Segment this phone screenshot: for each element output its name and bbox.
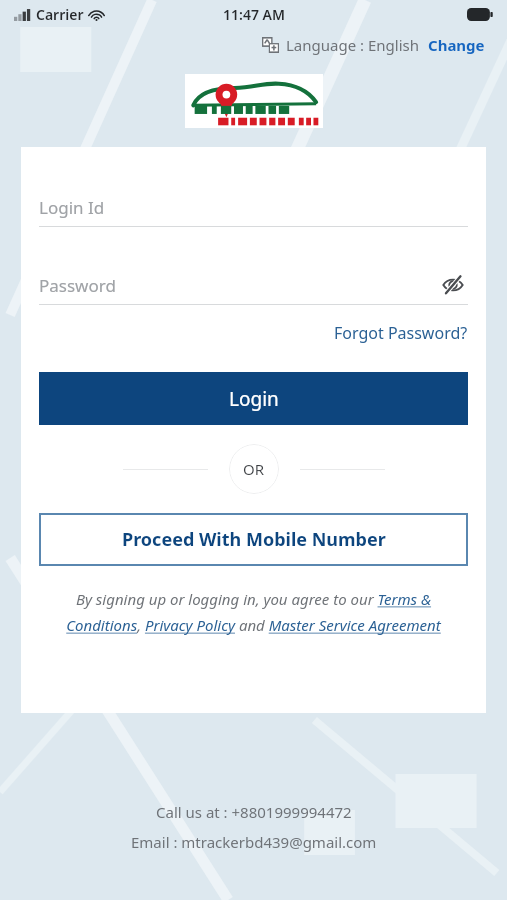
button[interactable]: Login	[39, 372, 468, 425]
staticText: 11:47 AM	[223, 5, 285, 24]
staticText: Call us at : +8801999994472	[156, 802, 352, 822]
staticText: Email : mtrackerbd439@gmail.com	[131, 832, 377, 852]
staticText: OR	[243, 459, 265, 479]
button[interactable]: Proceed With Mobile Number	[39, 513, 468, 566]
staticText: By signing up or logging in, you agree t…	[44, 589, 463, 636]
staticText: Forgot Password?	[334, 322, 468, 344]
button[interactable]: Forgot Password?	[334, 319, 468, 347]
staticText: Login Id	[39, 196, 105, 219]
staticText: Change	[428, 35, 485, 55]
button[interactable]: Show password	[438, 270, 468, 300]
staticText: Password	[39, 274, 116, 297]
button[interactable]: Language : English	[260, 33, 487, 57]
button[interactable]: By signing up or logging in, you agree t…	[44, 589, 463, 636]
button[interactable]: Password	[39, 269, 468, 301]
staticText: Proceed With Mobile Number	[122, 527, 386, 552]
staticText: Language : English	[286, 35, 419, 55]
staticText: Carrier	[36, 5, 84, 24]
staticText: Login	[229, 386, 279, 412]
button[interactable]: Login Id	[39, 192, 468, 222]
